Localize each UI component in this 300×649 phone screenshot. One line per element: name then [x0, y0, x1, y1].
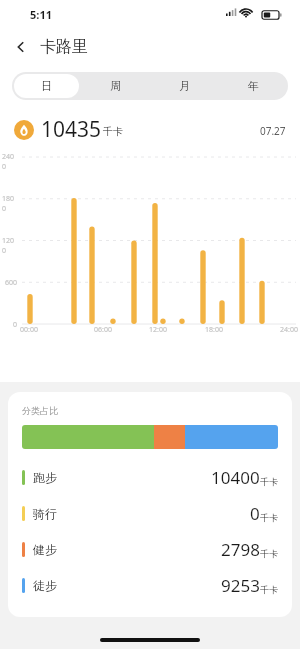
button[interactable]: 跑步: [22, 459, 278, 495]
staticText: 06:00: [94, 325, 112, 335]
staticText: 240: [2, 152, 15, 162]
button[interactable]: 月: [152, 74, 217, 98]
staticText: 9253: [221, 574, 260, 597]
staticText: 骑行: [33, 506, 57, 521]
staticText: 12:00: [149, 325, 167, 335]
button[interactable]: 日: [14, 74, 79, 98]
staticText: 0: [13, 320, 18, 330]
staticText: 千卡: [103, 125, 123, 138]
staticText: 月: [179, 79, 190, 93]
staticText: 千卡: [260, 512, 278, 523]
button[interactable]: Back: [6, 32, 36, 62]
staticText: 日: [41, 79, 52, 93]
staticText: 120: [2, 236, 15, 246]
staticText: 0: [2, 162, 7, 172]
button[interactable]: 年: [221, 74, 286, 98]
staticText: 0: [2, 246, 7, 256]
button[interactable]: 周: [83, 74, 148, 98]
staticText: 5:11: [30, 7, 52, 22]
staticText: 0: [250, 502, 260, 525]
staticText: 180: [2, 194, 15, 204]
staticText: 徒步: [33, 578, 57, 593]
staticText: 2798: [221, 538, 260, 561]
staticText: 卡路里: [40, 37, 88, 57]
staticText: 健步: [33, 542, 57, 557]
staticText: 跑步: [33, 470, 57, 485]
staticText: 周: [110, 79, 121, 93]
staticText: 00:00: [20, 325, 38, 335]
staticText: 07.27: [260, 124, 286, 138]
staticText: 千卡: [260, 476, 278, 487]
staticText: 10400: [211, 466, 260, 489]
button[interactable]: 徒步: [22, 567, 278, 603]
staticText: 600: [5, 278, 18, 288]
staticText: 24:00: [280, 325, 298, 335]
staticText: 千卡: [260, 584, 278, 595]
staticText: 年: [248, 79, 259, 93]
staticText: 10435: [41, 115, 102, 144]
staticText: 千卡: [260, 548, 278, 559]
staticText: 0: [2, 204, 7, 214]
button[interactable]: 骑行: [22, 495, 278, 531]
staticText: 分类占比: [22, 405, 58, 416]
button[interactable]: 健步: [22, 531, 278, 567]
staticText: 18:00: [205, 325, 223, 335]
